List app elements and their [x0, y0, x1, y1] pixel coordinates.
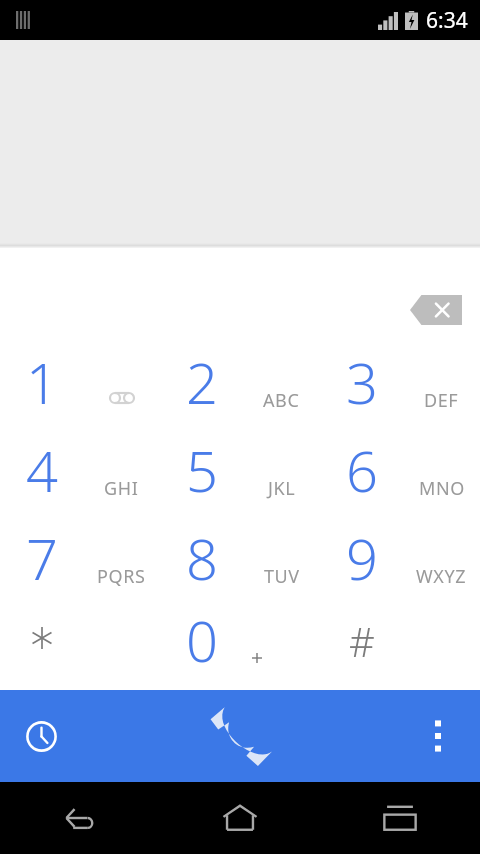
staticText: GHI — [104, 476, 139, 501]
button[interactable]: 2 — [160, 338, 320, 426]
staticText: 8 — [186, 520, 218, 596]
button[interactable]: 7 — [0, 514, 160, 602]
staticText: PQRS — [97, 564, 146, 589]
staticText: 7 — [26, 520, 58, 596]
staticText: WXYZ — [416, 564, 467, 589]
staticText: DEF — [424, 388, 459, 413]
button[interactable]: 1 — [0, 338, 160, 426]
staticText: 1 — [26, 344, 58, 420]
button[interactable]: 6 — [320, 426, 480, 514]
button[interactable]: Call history — [12, 707, 70, 765]
staticText: 4 — [26, 432, 58, 508]
staticText: 6:34 — [426, 6, 468, 35]
button[interactable]: 5 — [160, 426, 320, 514]
staticText: # — [349, 614, 375, 668]
staticText: JKL — [268, 476, 296, 501]
button[interactable]: Pound — [320, 602, 480, 690]
button[interactable]: Back — [0, 782, 160, 854]
button[interactable]: 9 — [320, 514, 480, 602]
button[interactable]: Recents — [320, 782, 480, 854]
button[interactable]: Dial — [197, 693, 283, 779]
button[interactable]: 4 — [0, 426, 160, 514]
button[interactable]: More options — [414, 712, 462, 760]
staticText: 2 — [186, 344, 218, 420]
staticText: 3 — [346, 344, 378, 420]
staticText: ABC — [263, 388, 300, 413]
button[interactable]: Home — [160, 782, 320, 854]
staticText: 0 — [186, 602, 218, 678]
button[interactable]: 8 — [160, 514, 320, 602]
staticText: MNO — [419, 476, 465, 501]
staticText: 6 — [346, 432, 378, 508]
button[interactable]: Delete — [410, 295, 462, 325]
staticText: 9 — [346, 520, 378, 596]
button[interactable]: 3 — [320, 338, 480, 426]
staticText: TUV — [264, 564, 300, 589]
staticText: 5 — [186, 432, 218, 508]
button[interactable]: Star — [0, 602, 160, 690]
button[interactable]: 0 — [160, 602, 320, 690]
